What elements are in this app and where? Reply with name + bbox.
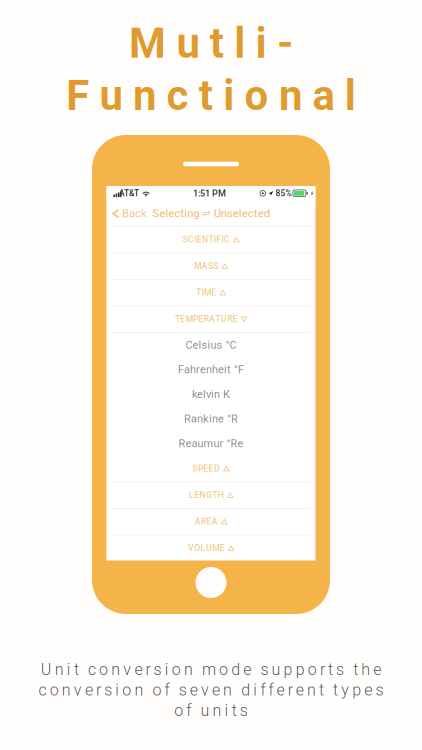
staticText: c: [166, 71, 188, 120]
staticText: U: [206, 543, 212, 553]
staticText: o: [245, 71, 269, 120]
staticText: o: [122, 681, 131, 699]
staticText: AT&T: [119, 188, 139, 198]
staticText: e: [212, 681, 220, 699]
staticText: R: [201, 517, 206, 527]
staticText: v: [201, 681, 209, 699]
staticText: t: [328, 660, 333, 679]
staticText: u: [176, 19, 199, 68]
staticText: L: [189, 490, 194, 500]
staticText: i: [67, 660, 71, 679]
staticText: n: [55, 660, 64, 679]
button[interactable]: T: [106, 280, 315, 305]
staticText: h: [361, 660, 370, 679]
staticText: n: [307, 681, 316, 699]
staticText: o: [219, 660, 228, 679]
staticText: t: [353, 660, 358, 679]
staticText: Rankine °R: [184, 412, 238, 425]
staticText: E: [203, 464, 208, 474]
button[interactable]: Fahrenheit °F: [106, 357, 315, 382]
staticText: n: [223, 681, 232, 699]
staticText: o: [308, 660, 317, 679]
staticText: Back: [122, 207, 147, 220]
button[interactable]: Reaumur °Re: [106, 431, 315, 456]
staticText: I: [214, 235, 216, 245]
button[interactable]: L: [106, 482, 315, 508]
staticText: M: [212, 543, 219, 553]
staticText: e: [277, 681, 285, 699]
button[interactable]: Back: [106, 202, 147, 225]
staticText: m: [202, 660, 216, 679]
staticText: T: [196, 288, 201, 298]
staticText: i: [253, 681, 257, 699]
staticText: c: [88, 660, 96, 679]
staticText: d: [241, 681, 250, 699]
staticText: E: [220, 543, 225, 553]
button[interactable]: S: [106, 456, 315, 481]
button[interactable]: M: [106, 253, 315, 279]
staticText: s: [104, 681, 112, 699]
staticText: l: [234, 19, 245, 68]
staticText: o: [99, 660, 108, 679]
staticText: Selecting: [152, 207, 199, 220]
staticText: i: [256, 19, 267, 68]
button[interactable]: Celsius °C: [106, 333, 315, 357]
staticText: U: [221, 314, 227, 324]
staticText: y: [341, 681, 349, 699]
staticText: I: [221, 235, 223, 245]
staticText: T: [215, 314, 220, 324]
staticText: E: [180, 314, 185, 324]
staticText: Reaumur °Re: [178, 437, 243, 450]
staticText: M: [129, 19, 166, 68]
staticText: l: [345, 71, 356, 120]
staticText: n: [184, 660, 193, 679]
staticText: i: [115, 681, 119, 699]
staticText: -: [277, 19, 293, 68]
staticText: H: [218, 490, 224, 500]
staticText: M: [186, 314, 193, 324]
staticText: V: [188, 543, 194, 553]
staticText: S: [183, 235, 188, 245]
staticText: 1:51 PM: [193, 188, 226, 199]
button[interactable]: T: [106, 306, 315, 332]
staticText: e: [243, 660, 251, 679]
staticText: s: [240, 701, 248, 720]
staticText: S: [213, 261, 218, 271]
staticText: p: [352, 681, 361, 699]
staticText: C: [224, 235, 230, 245]
button[interactable]: kelvin K: [106, 382, 315, 406]
staticText: e: [190, 681, 198, 699]
staticText: t: [232, 701, 237, 720]
staticText: r: [96, 681, 101, 699]
staticText: O: [194, 543, 200, 553]
staticText: d: [231, 660, 240, 679]
button[interactable]: Rankine °R: [106, 406, 315, 431]
staticText: L: [201, 543, 206, 553]
button[interactable]: V: [106, 535, 315, 561]
staticText: T: [175, 314, 180, 324]
staticText: A: [209, 314, 215, 324]
staticText: s: [336, 660, 344, 679]
staticText: E: [232, 314, 237, 324]
staticText: A: [202, 261, 208, 271]
staticText: a: [312, 71, 334, 120]
staticText: u: [271, 660, 280, 679]
staticText: e: [85, 681, 93, 699]
button[interactable]: A: [106, 509, 315, 534]
staticText: n: [111, 660, 120, 679]
staticText: n: [133, 71, 156, 120]
staticText: E: [197, 235, 202, 245]
staticText: s: [154, 660, 162, 679]
staticText: S: [208, 261, 213, 271]
staticText: u: [200, 701, 209, 720]
staticText: s: [260, 660, 268, 679]
staticText: N: [202, 235, 208, 245]
staticText: T: [212, 490, 217, 500]
staticText: N: [200, 490, 206, 500]
staticText: G: [206, 490, 212, 500]
staticText: t: [333, 681, 338, 699]
staticText: I: [202, 288, 204, 298]
staticText: r: [145, 660, 150, 679]
staticText: F: [66, 71, 89, 120]
button[interactable]: S: [106, 227, 315, 252]
